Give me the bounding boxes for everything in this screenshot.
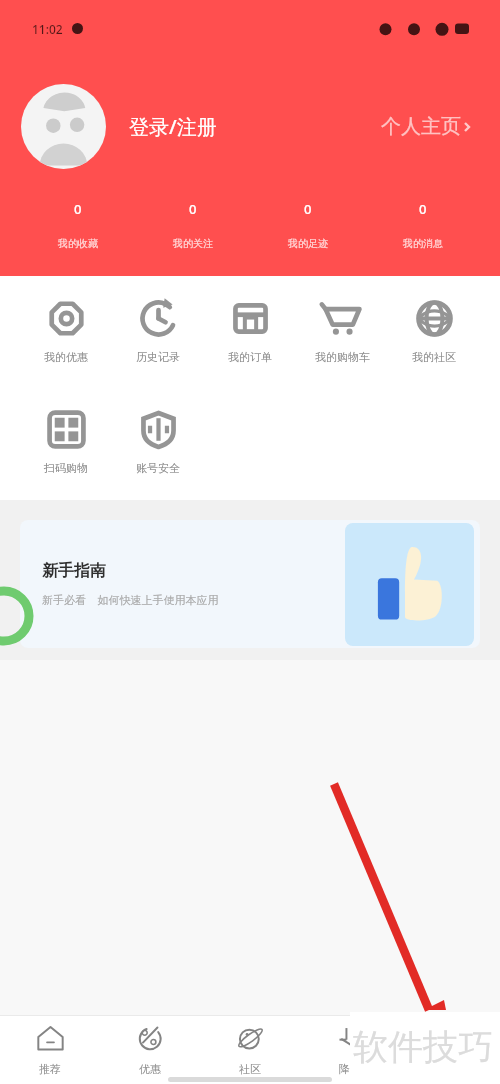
staticText: 我的优惠 [44, 350, 88, 364]
button[interactable]: 0 [250, 200, 365, 250]
staticText: 我的社区 [412, 350, 456, 364]
button[interactable]: 我的社区 [388, 295, 480, 364]
staticText: 0 [189, 200, 197, 218]
button[interactable]: 0 [20, 200, 135, 250]
button[interactable]: 0 [135, 200, 250, 250]
staticText: 新手必看 如何快速上手使用本应用 [42, 592, 219, 607]
button[interactable]: 历史记录 [112, 295, 204, 364]
staticText: 降价 [339, 1062, 361, 1076]
staticText: 0 [419, 200, 427, 218]
staticText: 我的消息 [403, 237, 443, 250]
staticText: 推荐 [39, 1062, 61, 1076]
staticText: 我的关注 [173, 237, 213, 250]
staticText: 0 [74, 200, 82, 218]
button[interactable]: 我的订单 [204, 295, 296, 364]
staticText: 新手指南 [42, 561, 106, 581]
staticText: 个人主页 [381, 114, 461, 139]
button[interactable]: 优惠 [100, 1016, 200, 1084]
button[interactable]: 我的优惠 [20, 295, 112, 364]
button[interactable]: 新手指南 [20, 520, 480, 648]
staticText: 我的订单 [228, 350, 272, 364]
staticText: 我的收藏 [58, 237, 98, 250]
staticText: 我的购物车 [315, 350, 370, 364]
button[interactable]: 扫码购物 [20, 406, 112, 475]
staticText: 历史记录 [136, 350, 180, 364]
staticText: 账号安全 [136, 461, 180, 475]
staticText: 0 [304, 200, 312, 218]
button[interactable]: 账号安全 [112, 406, 204, 475]
staticText: 软件技巧 [353, 1025, 493, 1069]
button[interactable]: 社区 [200, 1016, 300, 1084]
staticText: 登录/注册 [129, 113, 217, 140]
button[interactable]: 我的购物车 [296, 295, 388, 364]
staticText: 优惠 [139, 1062, 161, 1076]
button[interactable]: 个人主页 [381, 114, 472, 139]
staticText: 扫码购物 [44, 461, 88, 475]
button[interactable]: Avatar [21, 84, 106, 169]
staticText: 社区 [239, 1062, 261, 1076]
staticText: 11:02 [32, 21, 63, 37]
staticText: 我的足迹 [288, 237, 328, 250]
button[interactable]: 降价 [300, 1016, 400, 1084]
button[interactable]: 推荐 [0, 1016, 100, 1084]
button[interactable]: 我的 [400, 1016, 500, 1084]
button[interactable]: 0 [365, 200, 480, 250]
